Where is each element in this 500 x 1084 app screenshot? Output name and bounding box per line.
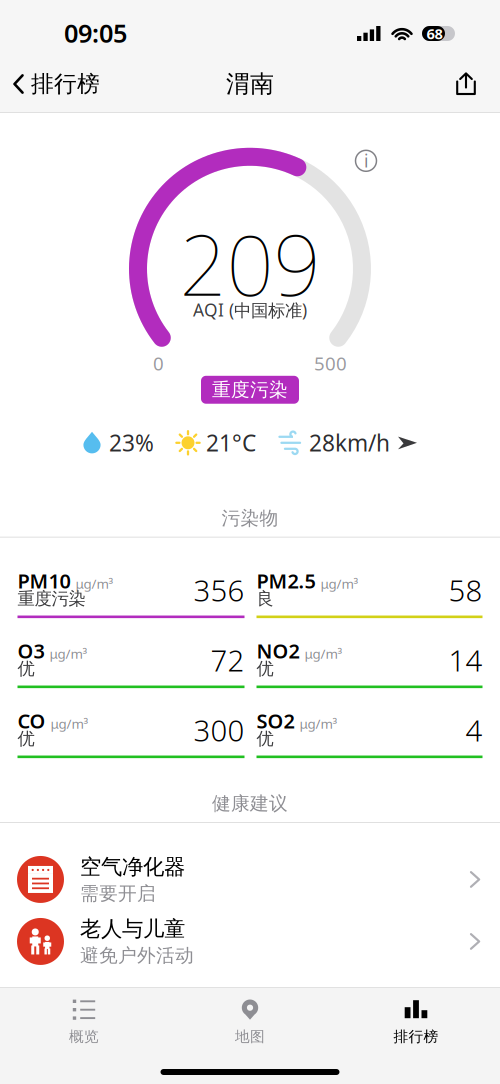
button[interactable]: 说明 (350, 145, 382, 177)
staticText: μg/m³ (304, 645, 342, 662)
staticText: 污染物 (221, 507, 278, 530)
staticText: 21°C (206, 428, 256, 458)
staticText: i (364, 149, 368, 172)
staticText: μg/m³ (49, 645, 87, 662)
staticText: 09:05 (64, 16, 127, 50)
staticText: 14 (448, 641, 482, 680)
staticText: 重度污染 (212, 378, 288, 401)
staticText: 排行榜 (393, 1028, 438, 1046)
staticText: 渭南 (226, 69, 274, 99)
staticText: 23% (109, 428, 154, 458)
staticText: 500 (314, 351, 347, 376)
button[interactable]: 分享 (444, 56, 500, 112)
staticText: 优 (256, 728, 273, 749)
staticText: 0 (153, 351, 164, 376)
staticText: 72 (210, 641, 244, 680)
staticText: 优 (256, 658, 273, 679)
staticText: CO (17, 707, 45, 734)
staticText: 地图 (235, 1028, 265, 1046)
staticText: PM10 (17, 567, 70, 594)
staticText: 68 (426, 24, 442, 43)
staticText: AQI (中国标准) (193, 298, 307, 321)
staticText: 209 (179, 209, 320, 319)
button[interactable]: 排行榜 (333, 988, 499, 1046)
staticText: 老人与儿童 (80, 916, 185, 942)
staticText: 300 (193, 711, 244, 750)
staticText: 356 (193, 571, 244, 610)
button[interactable]: 空气净化器 (0, 848, 500, 910)
staticText: 58 (448, 571, 482, 610)
staticText: μg/m³ (299, 715, 337, 732)
staticText: 避免户外活动 (80, 944, 194, 967)
button[interactable]: 老人与儿童 (0, 910, 500, 972)
staticText: PM2.5 (256, 567, 315, 594)
button[interactable]: 地图 (167, 988, 333, 1046)
staticText: 概览 (69, 1028, 99, 1046)
staticText: 需要开启 (80, 882, 156, 905)
staticText: 排行榜 (31, 70, 100, 98)
staticText: O3 (17, 637, 44, 664)
staticText: 优 (17, 658, 34, 679)
staticText: 28km/h (309, 428, 390, 458)
staticText: 良 (256, 588, 273, 609)
staticText: μg/m³ (50, 715, 88, 732)
staticText: 4 (465, 711, 482, 750)
button[interactable]: 概览 (1, 988, 167, 1046)
staticText: 重度污染 (17, 588, 85, 609)
staticText: 优 (17, 728, 34, 749)
staticText: μg/m³ (75, 575, 113, 592)
staticText: SO2 (256, 707, 294, 734)
staticText: 健康建议 (212, 792, 288, 815)
staticText: 空气净化器 (80, 854, 185, 880)
button[interactable]: 排行榜 (0, 56, 110, 112)
staticText: NO2 (256, 637, 299, 664)
staticText: μg/m³ (320, 575, 358, 592)
